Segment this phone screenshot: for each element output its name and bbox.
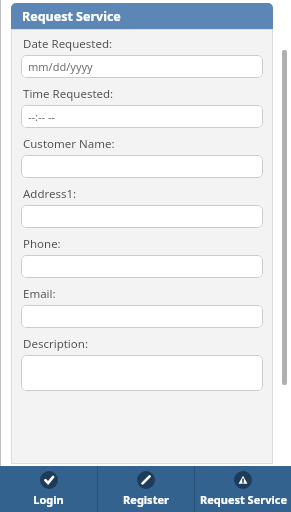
button[interactable]: Request Service [195, 466, 291, 512]
staticText: Register [123, 492, 169, 507]
staticText: --:-- -- [28, 109, 56, 124]
staticText: Customer Name: [23, 136, 115, 152]
staticText: Login [33, 492, 64, 507]
staticText: Time Requested: [23, 86, 114, 102]
button[interactable] [21, 205, 263, 228]
button[interactable]: --:-- -- [21, 105, 263, 128]
staticText: Request Service [200, 492, 287, 507]
staticText: Address1: [23, 186, 77, 202]
staticText: Email: [23, 286, 56, 302]
button[interactable] [21, 255, 263, 278]
other: Login [40, 471, 58, 489]
button[interactable]: Register [98, 466, 194, 512]
button[interactable] [21, 155, 263, 178]
staticText: Date Requested: [23, 36, 113, 52]
staticText: mm/dd/yyyy [28, 59, 93, 74]
other: Request Service [234, 471, 252, 489]
other: Register [137, 471, 155, 489]
staticText: Phone: [23, 236, 61, 252]
button[interactable]: Login [0, 466, 97, 512]
button[interactable] [21, 355, 263, 391]
button[interactable] [21, 305, 263, 328]
staticText: Description: [23, 336, 88, 352]
button[interactable]: mm/dd/yyyy [21, 55, 263, 78]
staticText: Request Service [22, 8, 121, 25]
